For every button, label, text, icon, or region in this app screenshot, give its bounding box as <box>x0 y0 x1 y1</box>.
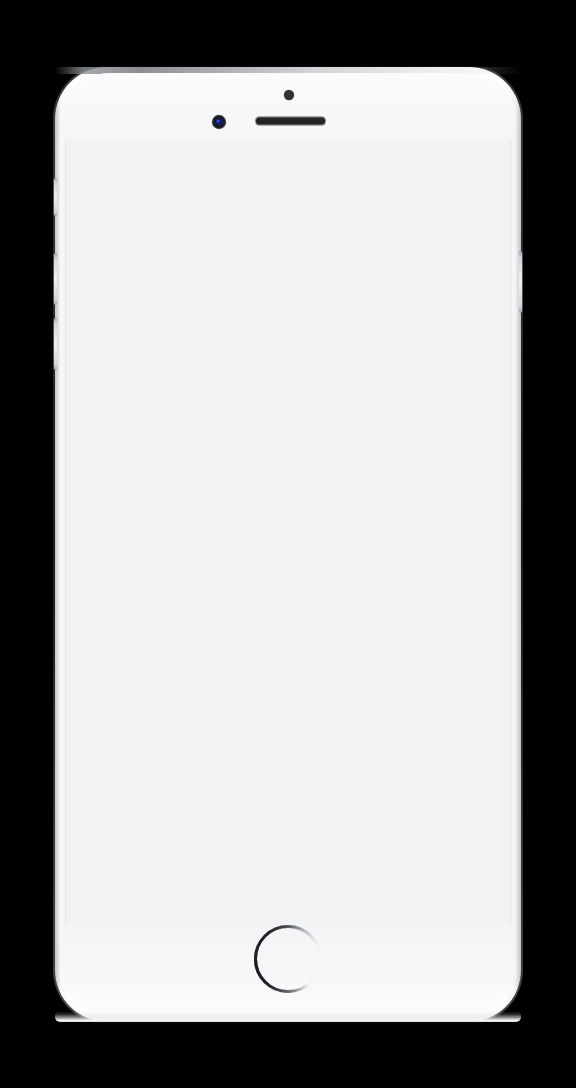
button[interactable]: White iPhone device mockup with blank sc… <box>0 0 576 1088</box>
